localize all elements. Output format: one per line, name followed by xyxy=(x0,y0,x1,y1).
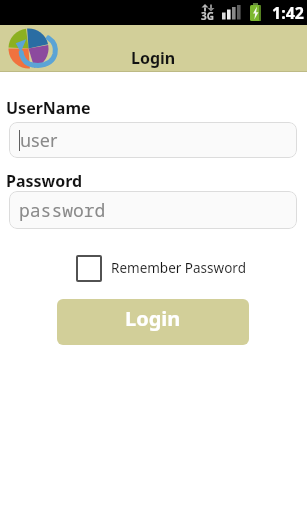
button[interactable]: user xyxy=(9,122,297,158)
staticText: Login xyxy=(131,47,176,69)
button[interactable]: Remember Password xyxy=(76,255,246,282)
button[interactable]: Login xyxy=(57,299,249,345)
staticText: user xyxy=(20,128,58,153)
staticText: Password xyxy=(6,170,83,192)
staticText: password xyxy=(19,198,106,223)
staticText: UserName xyxy=(6,97,91,119)
staticText: 1:42 xyxy=(272,2,304,24)
button[interactable]: password xyxy=(9,191,297,229)
staticText: 3G xyxy=(201,9,214,23)
staticText: Remember Password xyxy=(111,259,246,277)
staticText: Login xyxy=(125,305,181,332)
